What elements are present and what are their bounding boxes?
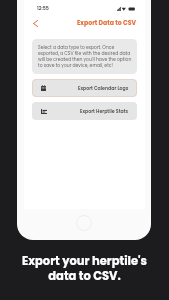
staticText: Export Calendar Logs [78, 85, 129, 92]
button[interactable]: Back [32, 17, 42, 27]
staticText: Export your herptile's data to CSV. [22, 253, 147, 284]
button[interactable]: Export Herptile Stats [32, 102, 137, 120]
staticText: 12:55 [37, 5, 49, 12]
staticText: Select a data type to export. Once expor… [38, 44, 134, 68]
staticText: Export Data to CSV [77, 18, 137, 27]
button[interactable]: Export Calendar Logs [32, 79, 137, 97]
staticText: Export Herptile Stats [80, 108, 129, 115]
